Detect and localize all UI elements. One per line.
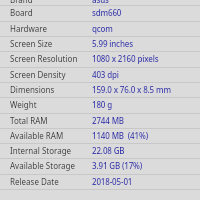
staticText: 3.91 GB (17%) <box>92 160 143 171</box>
staticText: Release Date <box>10 176 59 187</box>
staticText: Hardware <box>10 23 47 34</box>
staticText: Internal Storage <box>10 145 72 156</box>
staticText: Brand <box>10 0 33 5</box>
button[interactable]: Screen Resolution <box>0 51 200 66</box>
staticText: Available Storage <box>10 160 76 171</box>
staticText: 159.0 x 76.0 x 8.5 mm <box>92 84 171 95</box>
staticText: Available RAM <box>10 130 64 141</box>
staticText: 180 g <box>92 99 113 110</box>
button[interactable]: Release Date <box>0 174 200 189</box>
staticText: Total RAM <box>10 115 48 126</box>
button[interactable]: Available RAM <box>0 128 200 143</box>
staticText: qcom <box>92 23 113 34</box>
button[interactable]: Screen Size <box>0 36 200 51</box>
staticText: 1080 x 2160 pixels <box>92 53 159 64</box>
button[interactable]: Brand <box>0 0 200 7</box>
button[interactable]: Total RAM <box>0 113 200 128</box>
button[interactable]: Weight <box>0 97 200 112</box>
staticText: 22.08 GB <box>92 145 125 156</box>
button[interactable]: Internal Storage <box>0 143 200 158</box>
staticText: asus <box>92 0 109 5</box>
button[interactable]: Screen Density <box>0 67 200 82</box>
button[interactable]: Hardware <box>0 21 200 36</box>
button[interactable]: Board <box>0 5 200 20</box>
button[interactable]: Dimensions <box>0 82 200 97</box>
staticText: sdm660 <box>92 7 122 18</box>
staticText: Dimensions <box>10 84 55 95</box>
staticText: 5.99 inches <box>92 38 133 49</box>
staticText: 2018-05-01 <box>92 176 133 187</box>
button[interactable]: Available Storage <box>0 158 200 173</box>
staticText: Screen Density <box>10 69 66 80</box>
staticText: 403 dpi <box>92 69 119 80</box>
staticText: Screen Size <box>10 38 53 49</box>
staticText: Weight <box>10 99 37 110</box>
staticText: Board <box>10 7 33 18</box>
staticText: 1140 MB (41%) <box>92 130 148 141</box>
staticText: Screen Resolution <box>10 53 78 64</box>
staticText: 2744 MB <box>92 115 124 126</box>
